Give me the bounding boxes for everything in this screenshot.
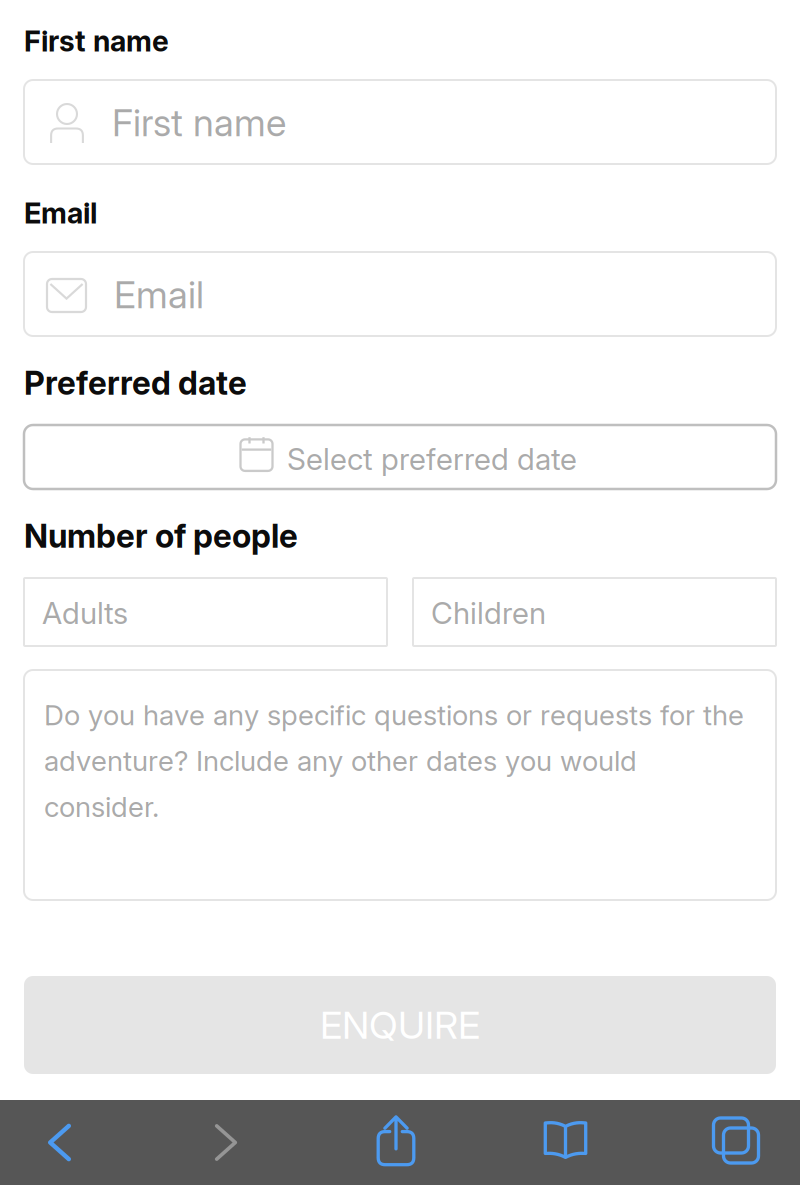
staticText: Select preferred date [287,441,577,477]
button[interactable]: Adults [24,578,387,646]
staticText: Email [114,272,204,317]
button[interactable]: Bookmarks [0,1100,140,1185]
staticText: Do you have any specific questions or re… [44,698,744,824]
button[interactable]: Do you have any specific questions or re… [24,670,776,900]
staticText: Adults [42,595,128,631]
button[interactable]: Back [0,1100,140,1185]
button[interactable]: Share [0,1100,140,1185]
button[interactable]: Email [24,252,776,336]
button[interactable]: Select preferred date [24,425,776,489]
staticText: Children [431,595,546,631]
button[interactable]: Children [413,578,776,646]
staticText: Preferred date [24,363,247,403]
button[interactable]: First name [24,80,776,164]
staticText: ENQUIRE [320,1002,480,1048]
staticText: Number of people [24,516,298,556]
staticText: Email [24,196,97,230]
staticText: First name [24,24,169,58]
button[interactable]: Tabs [0,1100,140,1185]
button[interactable]: Forward [0,1100,140,1185]
staticText: First name [112,100,286,145]
button[interactable]: ENQUIRE [24,976,776,1074]
